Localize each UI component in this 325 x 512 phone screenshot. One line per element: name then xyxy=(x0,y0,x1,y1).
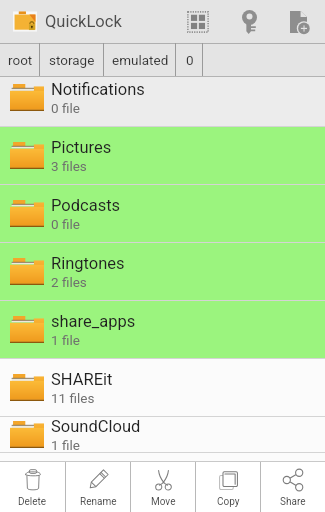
button[interactable]: Podcasts xyxy=(0,185,325,243)
staticText: SHAREit xyxy=(51,370,113,389)
button[interactable]: Copy xyxy=(196,462,260,512)
button[interactable]: share_apps xyxy=(0,301,325,359)
staticText: QuickLock xyxy=(45,12,122,31)
button[interactable]: Password key xyxy=(223,0,275,43)
staticText: Share xyxy=(280,496,306,508)
staticText: Notifications xyxy=(51,80,145,99)
staticText: SoundCloud xyxy=(51,417,141,436)
button[interactable]: SHAREit xyxy=(0,359,325,417)
staticText: 11 files xyxy=(51,390,95,406)
staticText: 2 files xyxy=(51,274,87,290)
button[interactable]: Rename xyxy=(66,462,130,512)
staticText: storage xyxy=(49,52,95,68)
staticText: Ringtones xyxy=(51,254,125,273)
staticText: root xyxy=(8,52,33,68)
button[interactable]: 0 xyxy=(176,43,203,77)
button[interactable]: storage xyxy=(40,43,104,77)
staticText: Delete xyxy=(18,496,47,508)
staticText: share_apps xyxy=(51,312,136,331)
button[interactable]: Move xyxy=(131,462,195,512)
staticText: emulated xyxy=(112,52,169,68)
staticText: 0 file xyxy=(51,100,80,116)
button[interactable]: New file xyxy=(275,0,322,43)
staticText: Rename xyxy=(80,496,117,508)
button[interactable]: root xyxy=(0,43,40,77)
staticText: Podcasts xyxy=(51,196,121,215)
button[interactable]: Ringtones xyxy=(0,243,325,301)
button[interactable]: Notifications xyxy=(0,77,325,127)
staticText: Pictures xyxy=(51,138,112,157)
button[interactable]: Select all xyxy=(173,0,223,43)
staticText: 1 file xyxy=(51,437,80,453)
button[interactable]: Share xyxy=(261,462,325,512)
button[interactable]: Delete xyxy=(0,462,65,512)
staticText: 0 file xyxy=(51,216,80,232)
staticText: Copy xyxy=(217,496,240,508)
staticText: 1 file xyxy=(51,332,80,348)
button[interactable]: SoundCloud xyxy=(0,417,325,453)
button[interactable]: emulated xyxy=(104,43,176,77)
staticText: 3 files xyxy=(51,158,87,174)
button[interactable]: Pictures xyxy=(0,127,325,185)
staticText: Move xyxy=(151,496,176,508)
staticText: 0 xyxy=(186,52,194,68)
